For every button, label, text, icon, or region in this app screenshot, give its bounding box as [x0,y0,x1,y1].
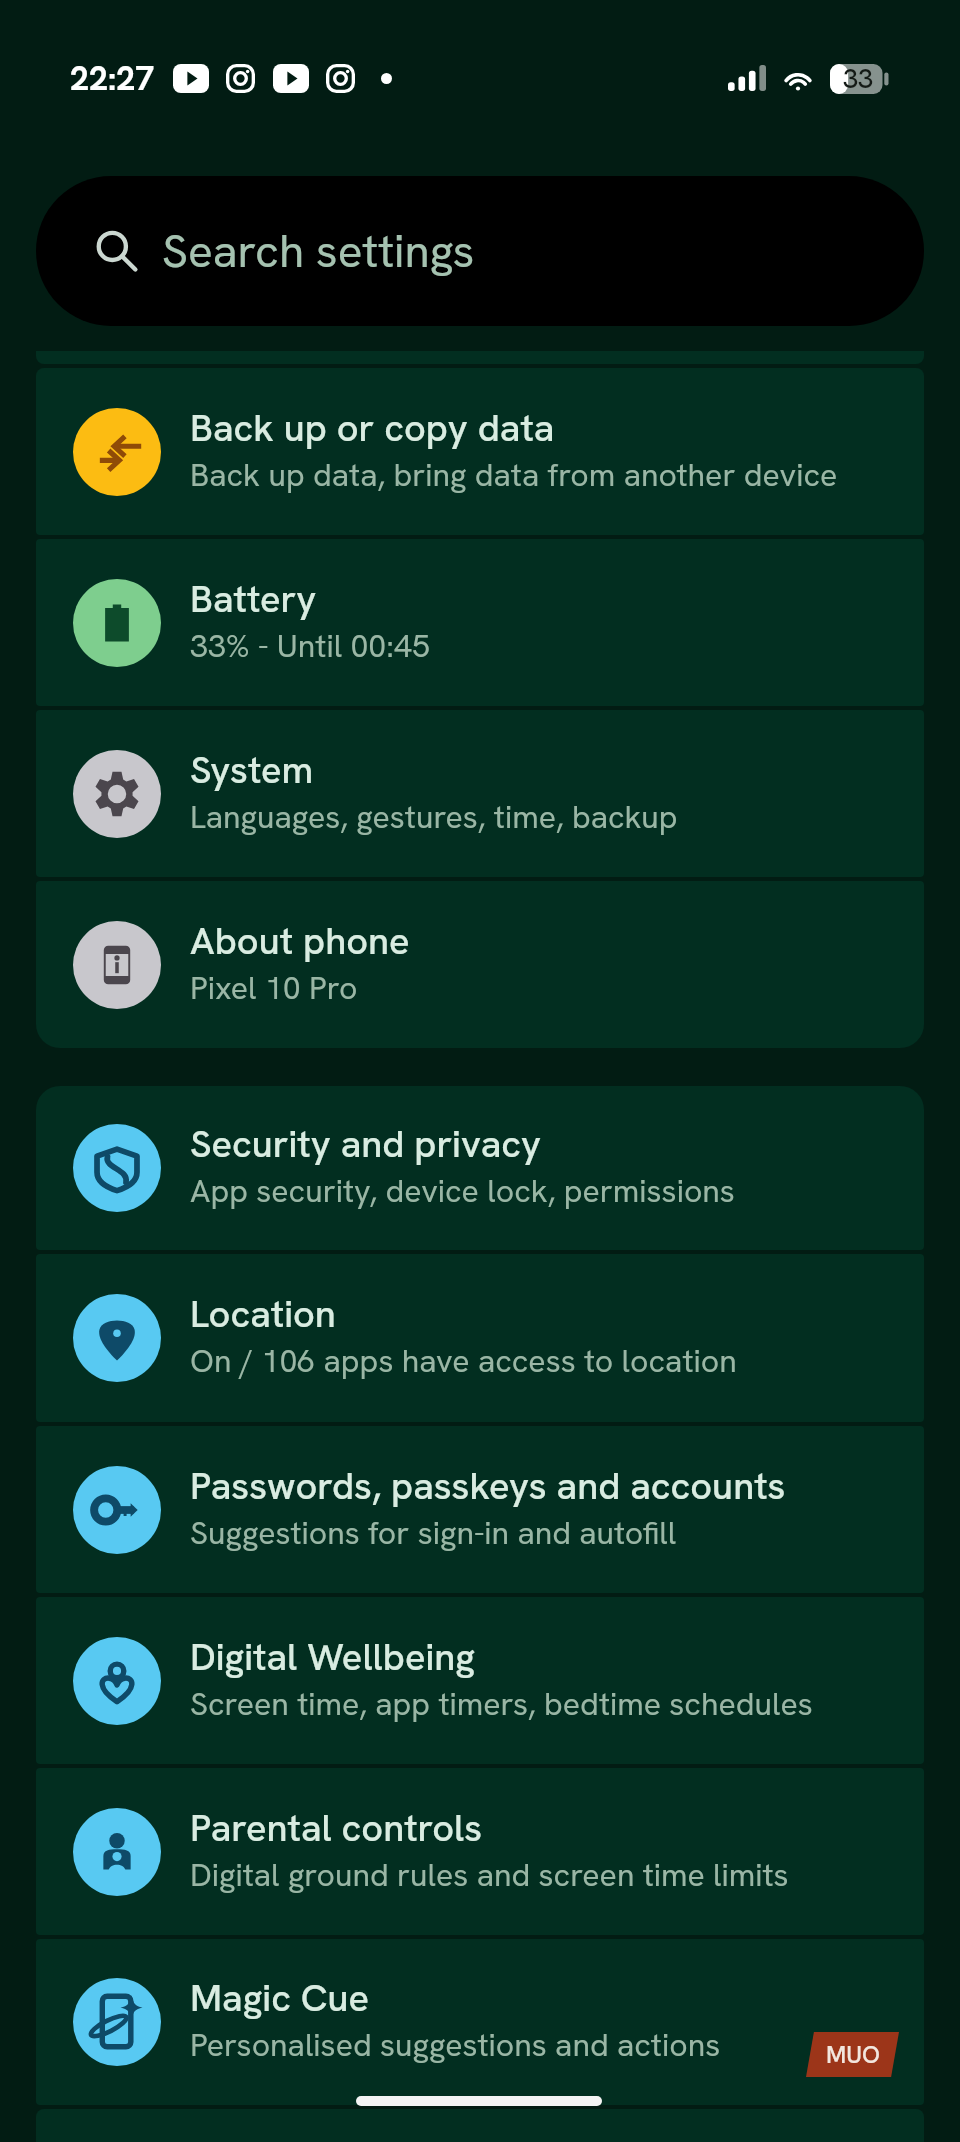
staticText: Pixel 10 Pro [190,967,358,1009]
staticText: App security, device lock, permissions [190,1170,735,1212]
button[interactable]: Security and privacy [36,1086,924,1250]
staticText: Security and privacy [190,1119,541,1169]
staticText: 22:27 [70,56,155,100]
staticText: On / 106 apps have access to location [190,1340,737,1382]
staticText: Screen time, app timers, bedtime schedul… [190,1683,813,1725]
staticText: Battery [190,574,317,624]
button[interactable]: Magic Cue [36,1939,924,2105]
staticText: About phone [190,916,410,966]
staticText: Suggestions for sign-in and autofill [190,1512,677,1554]
button[interactable]: About phone [36,881,924,1048]
staticText: Passwords, passkeys and accounts [190,1461,786,1511]
staticText: Parental controls [190,1803,483,1853]
staticText: Back up or copy data [190,403,555,453]
staticText: 33 [843,61,874,96]
staticText: Personalised suggestions and actions [190,2024,721,2066]
staticText: Back up data, bring data from another de… [190,454,838,496]
button[interactable]: Location [36,1254,924,1422]
button[interactable]: Parental controls [36,1768,924,1935]
button[interactable]: Passwords, passkeys and accounts [36,1426,924,1593]
staticText: Digital Wellbeing [190,1632,475,1682]
staticText: Languages, gestures, time, backup [190,796,678,838]
button[interactable]: Digital Wellbeing [36,1597,924,1764]
staticText: Digital ground rules and screen time lim… [190,1854,789,1896]
staticText: Magic Cue [190,1973,370,2023]
staticText: Search settings [162,221,475,281]
staticText: MUO [826,2039,880,2070]
button[interactable]: System [36,710,924,877]
button[interactable]: Battery [36,539,924,706]
button[interactable]: Back up or copy data [36,368,924,535]
staticText: 33% - Until 00:45 [190,625,430,667]
staticText: System [190,745,314,795]
button[interactable]: Search settings [36,176,924,326]
staticText: Location [190,1289,336,1339]
